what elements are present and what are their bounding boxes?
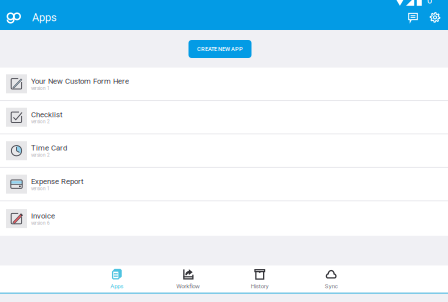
staticText: Time Card (31, 143, 67, 152)
button[interactable]: History (224, 265, 295, 292)
button[interactable]: Invoice (0, 201, 448, 236)
staticText: Invoice (31, 211, 55, 220)
staticText: 12:30 (427, 0, 444, 6)
button[interactable]: Sync (295, 265, 367, 292)
button[interactable]: Your New Custom Form Here (0, 68, 448, 101)
staticText: version 2 (31, 152, 50, 158)
staticText: Workflow (176, 283, 200, 290)
staticText: Sync (325, 283, 338, 290)
staticText: Checklist (31, 110, 63, 119)
button[interactable]: Settings (425, 8, 445, 26)
staticText: Apps (32, 11, 57, 24)
staticText: Expense Report (31, 177, 84, 186)
button[interactable]: Apps (81, 265, 152, 292)
staticText: Apps (110, 283, 123, 290)
staticText: Your New Custom Form Here (31, 77, 129, 86)
staticText: version 2 (31, 119, 50, 124)
staticText: CREATE NEW APP (197, 46, 243, 52)
staticText: History (251, 283, 269, 290)
staticText: version 1 (31, 86, 50, 91)
staticText: version 1 (31, 186, 50, 191)
button[interactable]: Messages (403, 8, 423, 26)
staticText: version 6 (31, 220, 50, 226)
button[interactable]: Checklist (0, 101, 448, 134)
button[interactable]: Workflow (152, 265, 224, 292)
button[interactable]: CREATE NEW APP (188, 40, 251, 58)
button[interactable]: Time Card (0, 134, 448, 168)
button[interactable]: Expense Report (0, 168, 448, 201)
